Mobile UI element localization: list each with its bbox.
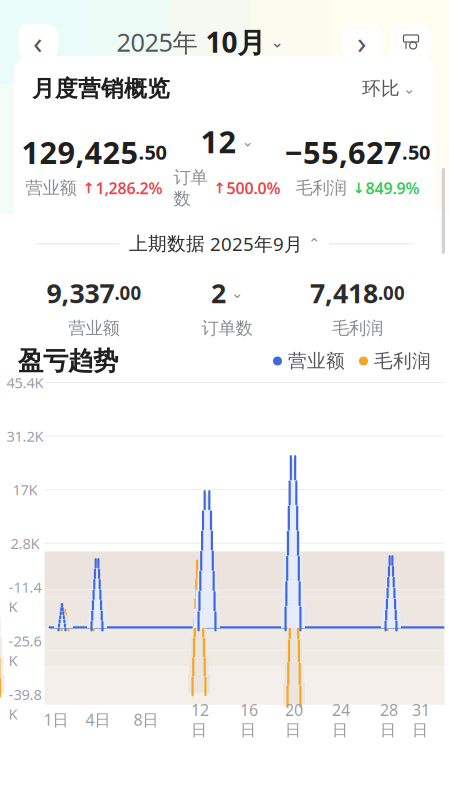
staticText: 2 [211,275,226,311]
staticText: 毛利润 [295,177,346,199]
staticText: 营业额 [25,177,76,199]
staticText: 1,286.2% [95,177,162,199]
staticText: 营业额 [68,318,119,339]
staticText: 45.4K [6,373,43,392]
staticText: 上期数据 [129,232,205,255]
staticText: ⌃ [308,235,320,252]
staticText: -11.4K [8,577,41,616]
button[interactable]: Previous month [18,24,58,60]
staticText: .00 [114,280,141,305]
staticText: 2025年 [116,25,205,59]
button[interactable]: Filter [391,24,431,60]
button[interactable]: 环比 [360,73,417,104]
staticText: 订单数 [201,318,252,339]
staticText: ⌄ [236,133,253,150]
staticText: ⌄ [265,33,283,51]
staticText: 12 [200,121,236,162]
staticText: ↓ [347,180,364,196]
staticText: 营业额 [288,349,345,372]
staticText: 毛利润 [332,318,383,339]
button[interactable]: 2025年 [108,17,291,67]
staticText: ↑ [208,180,225,196]
button[interactable]: 上期数据 [129,231,320,256]
staticText: 17K [12,480,37,499]
staticText: 9,337 [46,275,114,311]
staticText: ↑ [77,180,94,196]
staticText: 毛利润 [374,349,431,372]
staticText: 2.8K [10,533,39,553]
staticText: .50 [138,139,166,165]
staticText: −55,627 [285,132,402,172]
staticText: › [357,22,367,62]
staticText: 31日 [412,699,430,740]
staticText: 4日 [85,709,110,730]
staticText: .50 [402,139,430,165]
staticText: ‹ [33,22,43,62]
staticText: 31.2K [6,426,43,446]
staticText: 盈亏趋势 [18,345,118,376]
staticText: 24日 [332,699,350,740]
staticText: 月度营销概览 [32,75,170,102]
staticText: -39.8K [8,685,41,724]
staticText: 7,418 [310,275,378,311]
staticText: 20日 [285,699,303,740]
staticText: 16日 [240,699,258,740]
staticText: ⌄ [403,80,415,97]
staticText: 2025年9月 [210,231,303,256]
staticText: 1日 [43,709,68,730]
staticText: 849.9% [365,177,419,199]
staticText: 10月 [205,23,265,61]
staticText: 环比 [362,77,400,100]
button[interactable]: Next month [342,24,382,60]
staticText: 8日 [133,709,158,730]
staticText: 500.0% [226,177,280,199]
staticText: -25.6K [8,631,41,670]
staticText: ⌄ [226,284,243,301]
staticText: .00 [378,280,405,305]
staticText: 订单数 [173,167,207,209]
staticText: 28日 [380,699,398,740]
staticText: 12日 [191,699,209,740]
staticText: 129,425 [21,132,138,172]
